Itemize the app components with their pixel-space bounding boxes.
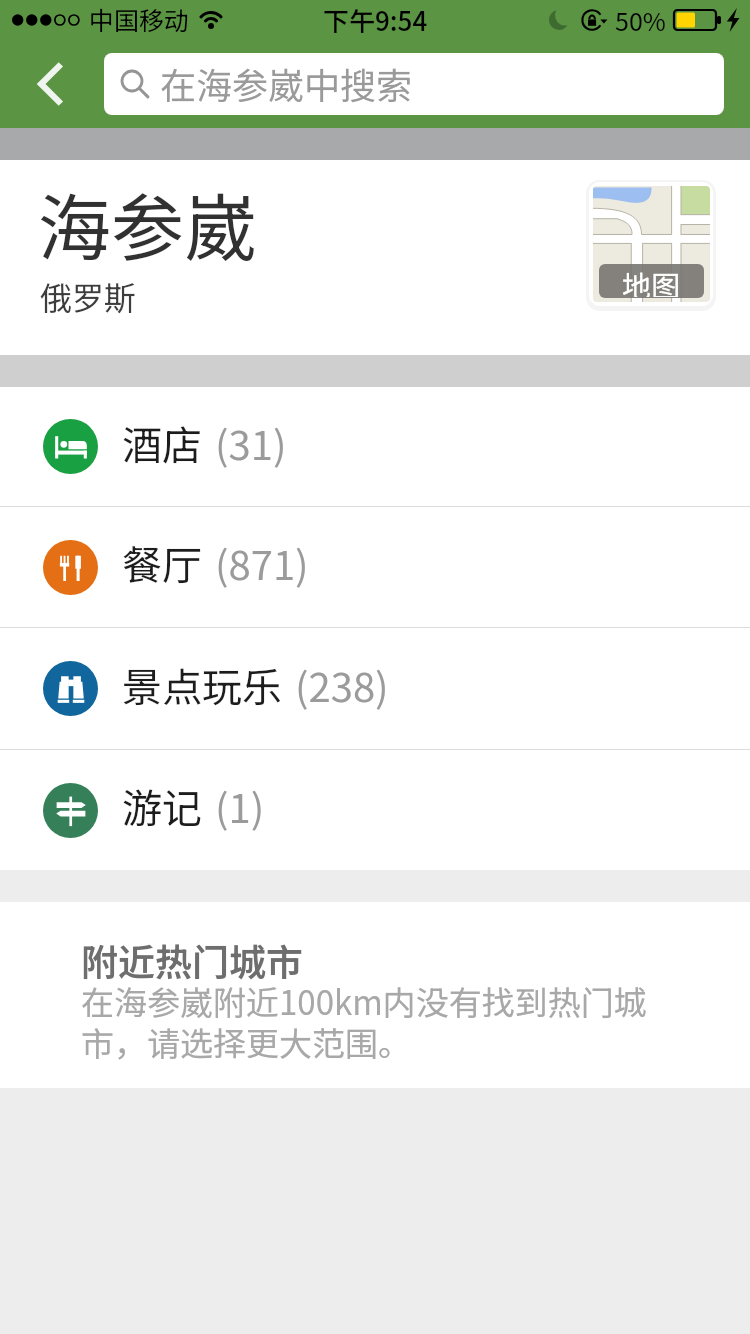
button[interactable]: 在海参崴中搜索 bbox=[104, 53, 724, 115]
staticText: 中国移动 bbox=[89, 1, 190, 37]
staticText: 俄罗斯 bbox=[40, 273, 137, 319]
staticText: (31) bbox=[215, 414, 287, 472]
staticText: 在海参崴中搜索 bbox=[160, 57, 413, 109]
button[interactable]: Map bbox=[589, 182, 713, 306]
staticText: 地图 bbox=[622, 264, 681, 297]
staticText: 附近热门城市 bbox=[81, 933, 303, 987]
staticText: 酒店 bbox=[122, 414, 202, 472]
button[interactable]: 游记 bbox=[0, 750, 750, 870]
staticText: 在海参崴附近100km内没有找到热门城市，请选择更大范围。 bbox=[81, 977, 661, 1065]
button[interactable]: 酒店 bbox=[0, 387, 750, 506]
staticText: 餐厅 bbox=[122, 534, 202, 592]
staticText: 50% bbox=[615, 2, 666, 38]
staticText: 景点玩乐 bbox=[122, 656, 282, 714]
button[interactable]: 餐厅 bbox=[0, 507, 750, 627]
button[interactable]: 景点玩乐 bbox=[0, 628, 750, 749]
staticText: (238) bbox=[295, 656, 389, 714]
button[interactable]: Back bbox=[12, 40, 90, 128]
staticText: 游记 bbox=[122, 777, 202, 835]
staticText: 海参崴 bbox=[38, 170, 257, 276]
staticText: 下午9:54 bbox=[323, 1, 428, 39]
staticText: (871) bbox=[215, 534, 309, 592]
staticText: (1) bbox=[215, 777, 265, 835]
